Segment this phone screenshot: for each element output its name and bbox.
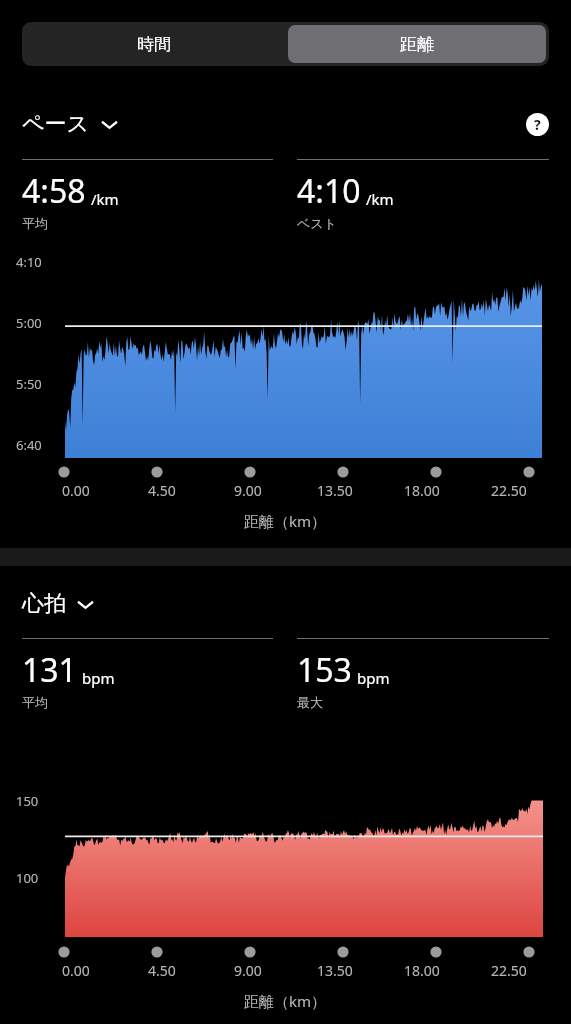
staticText: 距離 [400, 34, 434, 55]
staticText: 153 [297, 648, 352, 692]
staticText: 6:40 [16, 436, 42, 454]
staticText: 9.00 [234, 961, 262, 980]
staticText: 9.00 [234, 481, 262, 500]
staticText: 13.50 [317, 481, 353, 500]
button[interactable]: 131 [22, 638, 273, 710]
staticText: ? [534, 115, 541, 134]
staticText: 0.00 [62, 481, 90, 500]
staticText: ペース [22, 110, 90, 138]
staticText: bpm [82, 668, 115, 688]
button[interactable]: 4:58 [22, 159, 273, 231]
button[interactable]: 153 [297, 638, 549, 710]
staticText: 時間 [137, 34, 171, 55]
staticText: 最大 [297, 694, 323, 710]
staticText: 4.50 [148, 961, 176, 980]
staticText: /km [366, 189, 394, 209]
staticText: 5:00 [16, 314, 42, 332]
staticText: bpm [357, 668, 390, 688]
button[interactable]: ペース [22, 110, 118, 138]
staticText: 5:50 [16, 375, 42, 393]
button[interactable]: 4:10 [297, 159, 549, 231]
staticText: 100 [16, 869, 39, 887]
staticText: 22.50 [491, 961, 527, 980]
staticText: 4.50 [148, 481, 176, 500]
staticText: 13.50 [317, 961, 353, 980]
staticText: 131 [22, 648, 77, 692]
button[interactable]: 時間 [22, 22, 285, 66]
staticText: 0.00 [62, 961, 90, 980]
button[interactable]: 距離 [288, 25, 546, 63]
staticText: 心拍 [22, 590, 66, 618]
staticText: 18.00 [404, 481, 440, 500]
staticText: 150 [16, 792, 39, 810]
staticText: 平均 [22, 694, 48, 710]
staticText: 4:10 [16, 253, 42, 271]
staticText: /km [91, 189, 119, 209]
button[interactable]: ヘルプ [524, 111, 551, 138]
staticText: 4:58 [22, 169, 86, 213]
staticText: ベスト [297, 215, 337, 231]
staticText: 距離（km） [244, 991, 327, 1011]
staticText: 22.50 [491, 481, 527, 500]
staticText: 4:10 [297, 169, 361, 213]
button[interactable]: 心拍 [22, 590, 94, 618]
staticText: 18.00 [404, 961, 440, 980]
staticText: 平均 [22, 215, 48, 231]
staticText: 距離（km） [244, 511, 327, 531]
